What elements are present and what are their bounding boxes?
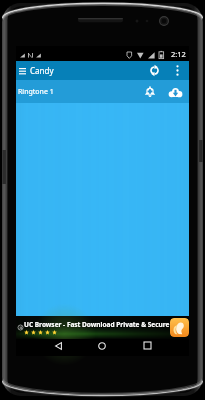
button[interactable]: Recent apps — [138, 339, 156, 352]
button[interactable]: Home — [93, 339, 111, 352]
button[interactable]: Refresh — [145, 61, 164, 80]
staticText: Ringtone 1 — [18, 87, 54, 97]
staticText: UC Browser - Fast Download Private & Sec… — [24, 320, 170, 329]
button[interactable]: Back — [49, 339, 67, 352]
button[interactable]: UC Browser — [170, 318, 189, 337]
button[interactable]: Ringtone 1 — [16, 80, 189, 103]
button[interactable]: Set as ringtone — [141, 83, 159, 101]
button[interactable]: Open navigation drawer — [16, 61, 28, 80]
staticText: Candy — [30, 65, 54, 76]
button[interactable]: More options — [170, 61, 184, 80]
staticText: 2:12 — [171, 49, 186, 59]
button[interactable]: Download — [166, 83, 184, 101]
